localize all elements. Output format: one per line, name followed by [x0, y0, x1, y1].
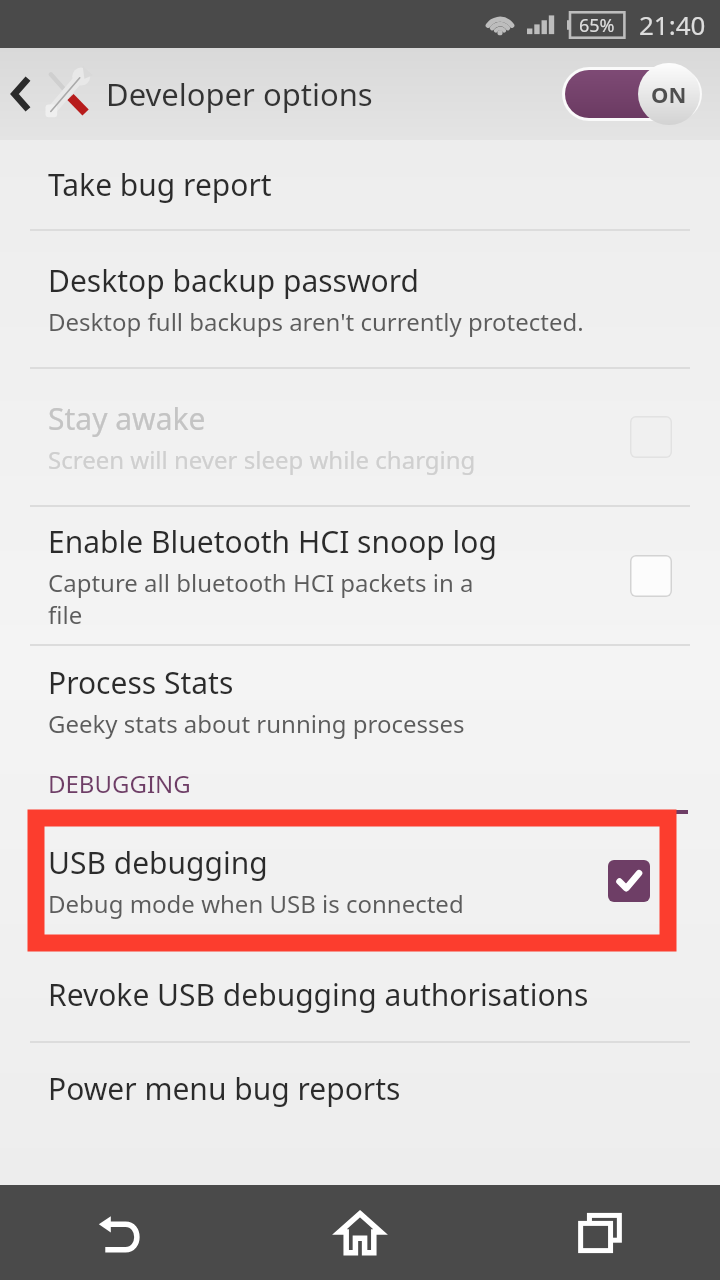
other: Unchecked	[630, 416, 672, 458]
other: Checked	[608, 860, 650, 902]
other: Unchecked	[630, 555, 672, 597]
button[interactable]: Enable Bluetooth HCI snoop log	[0, 507, 720, 644]
staticText: Desktop backup password	[48, 260, 419, 301]
staticText: Process Stats	[48, 662, 234, 703]
button[interactable]: Back	[0, 59, 381, 129]
button[interactable]: Power menu bug reports	[0, 1043, 720, 1133]
staticText: Capture all bluetooth HCI packets in a f…	[48, 566, 474, 631]
staticText: 65%	[579, 13, 615, 38]
button[interactable]: Recents	[480, 1185, 720, 1280]
staticText: Developer options	[106, 73, 373, 115]
staticText: USB debugging	[48, 842, 268, 883]
staticText: ON	[651, 79, 687, 109]
staticText: Stay awake	[48, 398, 206, 439]
button[interactable]: USB debugging	[0, 814, 720, 947]
button[interactable]: Home	[240, 1185, 480, 1280]
staticText: Geeky stats about running processes	[48, 707, 465, 740]
staticText: Revoke USB debugging authorisations	[48, 974, 589, 1015]
button[interactable]: Back	[0, 1185, 240, 1280]
staticText: Screen will never sleep while charging	[48, 443, 476, 476]
staticText: Desktop full backups aren't currently pr…	[48, 305, 584, 338]
button[interactable]: Process Stats	[0, 646, 720, 756]
staticText: Debug mode when USB is connected	[48, 887, 464, 920]
button[interactable]: Stay awake	[0, 369, 720, 505]
button[interactable]: Take bug report	[0, 140, 720, 229]
staticText: 21:40	[639, 7, 706, 42]
staticText: Power menu bug reports	[48, 1068, 401, 1109]
button[interactable]: Desktop backup password	[0, 231, 720, 367]
staticText: Enable Bluetooth HCI snoop log	[48, 521, 497, 562]
button[interactable]: Revoke USB debugging authorisations	[0, 947, 720, 1041]
staticText: Take bug report	[48, 164, 272, 205]
other: Back	[10, 76, 32, 112]
staticText: DEBUGGING	[48, 767, 191, 800]
button[interactable]: Developer options on	[562, 63, 702, 125]
